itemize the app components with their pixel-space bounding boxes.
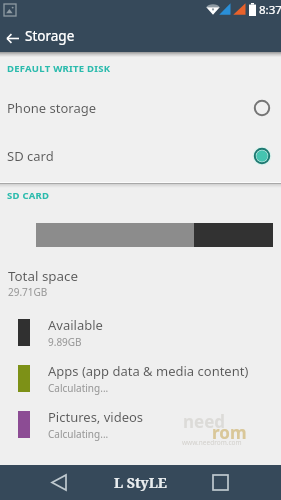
staticText: www.needrom.com [182, 438, 242, 447]
staticText: Storage [25, 27, 75, 45]
button[interactable]: Pictures, videos [0, 401, 281, 447]
button[interactable]: Available [0, 309, 281, 355]
staticText: Apps (app data & media content) [48, 362, 249, 380]
button[interactable]: Back [2, 24, 23, 52]
staticText: 29.71GB [8, 285, 48, 299]
staticText: Calculating... [48, 381, 109, 395]
staticText: rom [212, 421, 247, 444]
button[interactable]: SD card [0, 132, 281, 180]
staticText: L StyLE [114, 473, 167, 492]
staticText: 8:37 [259, 2, 281, 18]
staticText: Phone storage [7, 99, 252, 117]
button[interactable]: Apps (app data & media content) [0, 355, 281, 401]
staticText: SD CARD [7, 189, 50, 202]
staticText: Total space [8, 267, 79, 285]
staticText: need [183, 410, 226, 433]
button[interactable]: Recents [198, 465, 242, 500]
staticText: Calculating... [48, 427, 109, 441]
button[interactable]: Back [37, 465, 81, 500]
staticText: DEFAULT WRITE DISK [7, 62, 111, 75]
button[interactable]: Phone storage [0, 84, 281, 132]
button[interactable]: Home [105, 465, 175, 500]
staticText: Available [48, 316, 103, 334]
staticText: SD card [7, 147, 252, 165]
staticText: 9.89GB [48, 335, 82, 349]
staticText: Pictures, videos [48, 408, 144, 426]
